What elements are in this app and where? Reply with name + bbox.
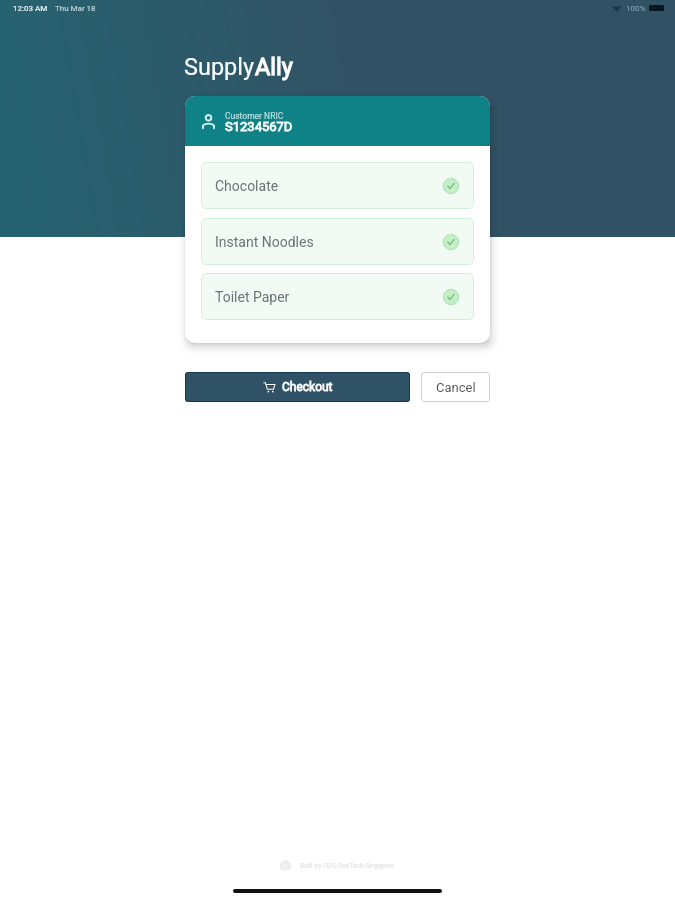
staticText: 100%: [626, 4, 646, 13]
button[interactable]: Chocolate: [201, 162, 474, 209]
staticText: Toilet Paper: [215, 289, 290, 305]
staticText: 12:03 AM: [13, 4, 48, 13]
other: Item collected: [443, 234, 459, 250]
staticText: Chocolate: [215, 178, 279, 194]
staticText: Supply: [184, 53, 255, 81]
staticText: Built by GDS, GovTech Singapore: [300, 862, 395, 870]
staticText: S1234567D: [225, 119, 293, 134]
staticText: Customer NRIC: [225, 111, 284, 121]
button[interactable]: Instant Noodles: [201, 218, 474, 265]
other: Customer: [201, 113, 216, 130]
staticText: Checkout: [282, 380, 333, 394]
other: Item collected: [443, 289, 459, 305]
other: GovTech logo: [278, 858, 293, 873]
button[interactable]: Toilet Paper: [201, 273, 474, 320]
button[interactable]: Cancel: [421, 372, 490, 402]
other: Item collected: [443, 178, 459, 194]
staticText: Thu Mar 18: [55, 4, 96, 13]
other: Wi-Fi: [612, 5, 622, 12]
staticText: Ally: [255, 53, 293, 81]
staticText: Cancel: [436, 380, 476, 395]
staticText: Instant Noodles: [215, 234, 314, 250]
button[interactable]: Checkout: [185, 372, 410, 402]
